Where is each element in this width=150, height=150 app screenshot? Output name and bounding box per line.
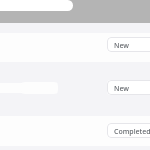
button[interactable]: New bbox=[107, 37, 150, 52]
staticText: New bbox=[114, 41, 129, 51]
button[interactable] bbox=[0, 116, 150, 146]
staticText: New bbox=[114, 84, 129, 94]
button[interactable]: New bbox=[107, 80, 150, 95]
staticText: Completed bbox=[114, 127, 150, 137]
button[interactable]: Completed bbox=[107, 123, 150, 138]
button[interactable]: Title bbox=[0, 0, 73, 11]
button[interactable] bbox=[0, 33, 150, 62]
